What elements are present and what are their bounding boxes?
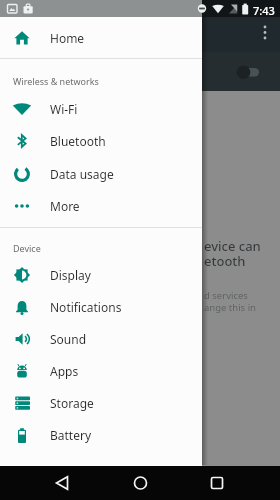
button[interactable]: More <box>0 190 202 222</box>
button[interactable]: Wi-Fi <box>0 93 202 125</box>
button[interactable]: Data usage <box>0 158 202 190</box>
staticText: evice can <box>204 237 261 255</box>
button[interactable] <box>93 466 187 500</box>
button[interactable]: Sound <box>0 323 202 355</box>
button[interactable] <box>0 466 93 500</box>
button[interactable]: Apps <box>0 355 202 387</box>
button[interactable]: Storage <box>0 387 202 419</box>
staticText: Display <box>50 267 91 283</box>
staticText: Wi-Fi <box>50 101 78 117</box>
staticText: Sound <box>50 331 87 347</box>
staticText: Battery <box>50 427 92 443</box>
staticText: Notifications <box>50 299 122 315</box>
staticText: Wireless & networks <box>13 75 99 87</box>
button[interactable]: Notifications <box>0 291 202 323</box>
staticText: Bluetooth <box>50 133 106 149</box>
staticText: ange this in <box>204 301 256 314</box>
button[interactable]: Display <box>0 259 202 291</box>
staticText: Apps <box>50 363 79 379</box>
staticText: Home <box>50 30 85 46</box>
staticText: etooth <box>204 252 246 270</box>
staticText: d services <box>204 289 248 302</box>
staticText: Storage <box>50 395 94 411</box>
button[interactable]: Battery <box>0 419 202 451</box>
button[interactable] <box>187 466 280 500</box>
staticText: Data usage <box>50 166 114 182</box>
button[interactable]: Bluetooth <box>0 125 202 157</box>
staticText: More <box>50 198 80 214</box>
button[interactable]: Home <box>0 22 202 54</box>
staticText: 7:43 <box>253 3 275 18</box>
staticText: Device <box>13 242 41 254</box>
